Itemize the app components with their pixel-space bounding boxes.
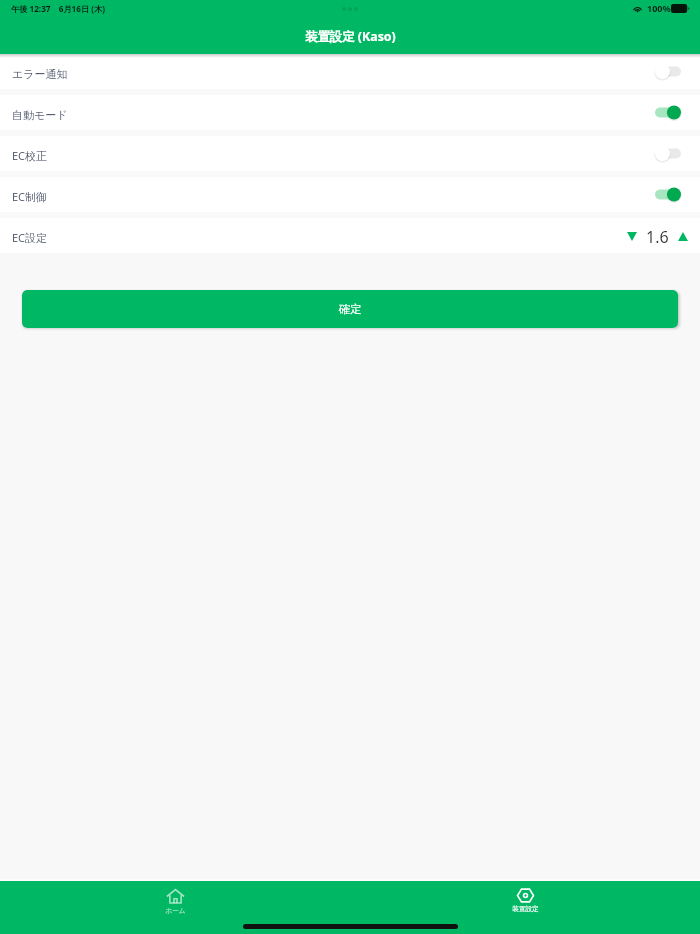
button[interactable]: 自動モード	[0, 95, 700, 130]
button[interactable]: Increase	[674, 227, 692, 245]
staticText: ホーム	[165, 907, 186, 915]
button[interactable]: 確定	[22, 290, 678, 328]
staticText: 装置設定	[512, 905, 539, 913]
button[interactable]: EC校正	[0, 136, 700, 171]
button[interactable]: Off	[655, 63, 681, 80]
staticText: エラー通知	[12, 67, 68, 81]
staticText: 装置設定 (Kaso)	[305, 28, 396, 45]
button[interactable]: ホーム	[165, 881, 186, 934]
staticText: 午後 12:37 6月16日 (木)	[11, 3, 106, 14]
button[interactable]: Decrease	[624, 227, 642, 245]
staticText: EC設定	[12, 230, 48, 245]
button[interactable]: On	[655, 104, 681, 121]
staticText: 自動モード	[12, 108, 68, 122]
button[interactable]: エラー通知	[0, 54, 700, 89]
button[interactable]: Off	[655, 145, 681, 162]
staticText: 確定	[339, 302, 362, 316]
staticText: EC校正	[12, 148, 48, 163]
staticText: 100%	[647, 2, 671, 14]
staticText: 1.6	[646, 226, 669, 248]
button[interactable]: 装置設定	[512, 881, 539, 934]
button[interactable]: On	[655, 186, 681, 203]
staticText: EC制御	[12, 189, 48, 204]
button[interactable]: EC制御	[0, 177, 700, 212]
